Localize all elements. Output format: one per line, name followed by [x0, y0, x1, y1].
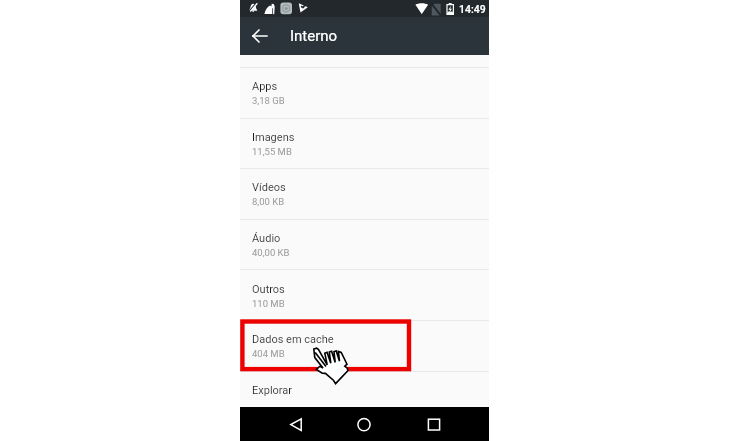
- staticText: Explorar: [252, 384, 293, 397]
- button[interactable]: Imagens: [240, 119, 489, 168]
- button[interactable]: Áudio: [240, 220, 489, 269]
- button[interactable]: Home: [350, 410, 378, 438]
- staticText: Dados em cache: [252, 333, 334, 346]
- button[interactable]: Recent apps: [420, 410, 448, 438]
- button[interactable]: Outros: [240, 271, 489, 320]
- staticText: Outros: [252, 283, 285, 296]
- staticText: 40,00 KB: [252, 247, 290, 258]
- staticText: Interno: [290, 27, 338, 45]
- staticText: 11,55 MB: [252, 146, 292, 157]
- staticText: 8,00 KB: [252, 196, 285, 207]
- button[interactable]: Vídeos: [240, 169, 489, 218]
- staticText: 14:49: [459, 3, 486, 15]
- button[interactable]: Back: [247, 23, 273, 49]
- staticText: 110 MB: [252, 298, 285, 309]
- staticText: Vídeos: [252, 181, 286, 194]
- staticText: Imagens: [252, 131, 295, 144]
- button[interactable]: Dados em cache: [240, 321, 489, 370]
- button[interactable]: Explorar: [240, 372, 489, 421]
- staticText: Áudio: [252, 232, 281, 245]
- staticText: Apps: [252, 80, 278, 93]
- button[interactable]: Apps: [240, 68, 489, 117]
- staticText: 404 MB: [252, 348, 285, 359]
- button[interactable]: Back: [282, 410, 310, 438]
- staticText: 3,18 GB: [252, 95, 285, 106]
